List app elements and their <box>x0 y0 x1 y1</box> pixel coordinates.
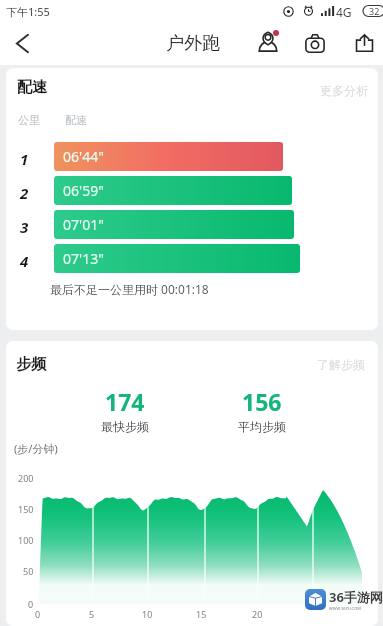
button[interactable]: Share <box>346 25 382 61</box>
button[interactable]: Camera <box>297 25 333 61</box>
staticText: 户外跑 <box>166 32 220 55</box>
button[interactable]: Back <box>0 22 43 65</box>
staticText: 10 <box>142 608 153 620</box>
staticText: 07'13" <box>63 249 104 268</box>
staticText: 下午1:55 <box>6 4 50 19</box>
staticText: 配速 <box>17 78 47 97</box>
staticText: 156 <box>242 386 282 417</box>
button[interactable]: 更多分析 <box>320 83 368 98</box>
staticText: 步频 <box>16 355 46 374</box>
staticText: WWW.36YU.COM <box>329 606 361 611</box>
staticText: 了解步频 <box>317 357 365 372</box>
staticText: 3 <box>20 217 34 237</box>
staticText: 200 <box>18 472 34 484</box>
staticText: 50 <box>23 565 34 577</box>
staticText: 15 <box>196 608 207 620</box>
staticText: 更多分析 <box>320 83 368 98</box>
staticText: 100 <box>18 534 34 546</box>
button[interactable]: 了解步频 <box>317 357 365 372</box>
staticText: 07'01" <box>63 215 104 234</box>
staticText: 4 <box>20 251 34 271</box>
staticText: 20 <box>252 608 263 620</box>
staticText: 150 <box>18 503 34 515</box>
staticText: 32 <box>369 5 380 17</box>
staticText: 最后不足一公里用时 00:01:18 <box>50 281 209 297</box>
staticText: 最快步频 <box>101 419 149 434</box>
staticText: 174 <box>105 386 145 417</box>
staticText: 36手游网 <box>329 588 383 606</box>
staticText: 配速 <box>65 113 87 127</box>
staticText: 平均步频 <box>238 419 286 434</box>
staticText: 5 <box>89 608 95 620</box>
staticText: 公里 <box>18 113 40 127</box>
staticText: 4G <box>336 4 352 20</box>
staticText: 06'59" <box>63 181 104 200</box>
staticText: 06'44" <box>63 147 104 166</box>
staticText: 0 <box>35 608 41 620</box>
button[interactable]: Runners <box>250 23 286 59</box>
staticText: 1 <box>20 149 34 169</box>
staticText: 0 <box>28 598 34 610</box>
staticText: 2 <box>20 183 34 203</box>
staticText: (步/分钟) <box>14 441 58 456</box>
